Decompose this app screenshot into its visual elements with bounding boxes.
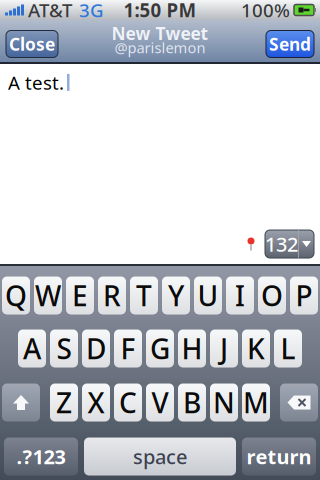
button[interactable]: 132 bbox=[265, 230, 314, 258]
staticText: .?123 bbox=[16, 443, 65, 470]
button[interactable]: S bbox=[50, 329, 78, 367]
button[interactable]: D bbox=[82, 329, 110, 367]
button[interactable]: G bbox=[146, 329, 174, 367]
staticText: space bbox=[133, 443, 187, 470]
button[interactable]: T bbox=[130, 276, 158, 314]
button[interactable]: M bbox=[242, 383, 270, 421]
staticText: R bbox=[103, 277, 121, 314]
staticText: T bbox=[136, 277, 152, 314]
staticText: 1:50 PM bbox=[123, 0, 196, 22]
button[interactable]: Delete bbox=[280, 383, 318, 421]
button[interactable]: Send bbox=[266, 30, 314, 57]
button[interactable]: A bbox=[18, 329, 46, 367]
staticText: G bbox=[150, 330, 170, 367]
staticText: K bbox=[247, 330, 265, 367]
button[interactable]: return bbox=[242, 437, 316, 475]
button[interactable]: H bbox=[178, 329, 206, 367]
button[interactable]: B bbox=[178, 383, 206, 421]
staticText: A bbox=[23, 330, 41, 367]
button[interactable]: Z bbox=[50, 383, 78, 421]
staticText: W bbox=[35, 277, 61, 314]
staticText: V bbox=[151, 384, 168, 421]
staticText: 132 bbox=[265, 231, 298, 257]
button[interactable]: O bbox=[258, 276, 286, 314]
staticText: 3G bbox=[79, 0, 104, 22]
staticText: A test. bbox=[8, 70, 64, 95]
button[interactable]: space bbox=[84, 437, 236, 475]
staticText: F bbox=[120, 330, 135, 367]
button[interactable]: I bbox=[226, 276, 254, 314]
button[interactable]: L bbox=[274, 329, 302, 367]
button[interactable]: F bbox=[114, 329, 142, 367]
staticText: H bbox=[181, 330, 202, 367]
button[interactable]: Shift bbox=[2, 383, 40, 421]
staticText: P bbox=[295, 277, 312, 314]
staticText: C bbox=[119, 384, 137, 421]
button[interactable]: E bbox=[66, 276, 94, 314]
staticText: B bbox=[183, 384, 201, 421]
staticText: I bbox=[235, 277, 245, 314]
staticText: U bbox=[197, 277, 218, 314]
staticText: Q bbox=[5, 277, 27, 314]
button[interactable]: V bbox=[146, 383, 174, 421]
staticText: Y bbox=[168, 277, 184, 314]
button[interactable]: N bbox=[210, 383, 238, 421]
staticText: M bbox=[243, 384, 269, 421]
staticText: L bbox=[280, 330, 295, 367]
button[interactable]: Close bbox=[6, 30, 58, 57]
staticText: @parislemon bbox=[114, 38, 205, 57]
button[interactable]: P bbox=[290, 276, 318, 314]
button[interactable]: Q bbox=[2, 276, 30, 314]
staticText: AT&T bbox=[28, 0, 72, 22]
button[interactable]: Y bbox=[162, 276, 190, 314]
button[interactable]: J bbox=[210, 329, 238, 367]
button[interactable]: R bbox=[98, 276, 126, 314]
staticText: O bbox=[261, 277, 283, 314]
staticText: return bbox=[246, 443, 311, 470]
button[interactable]: .?123 bbox=[4, 437, 78, 475]
button[interactable]: K bbox=[242, 329, 270, 367]
staticText: 100% bbox=[241, 0, 290, 22]
staticText: Send bbox=[269, 32, 311, 55]
staticText: N bbox=[213, 384, 235, 421]
button[interactable]: W bbox=[34, 276, 62, 314]
staticText: D bbox=[86, 330, 106, 367]
staticText: New Tweet bbox=[111, 22, 208, 45]
staticText: Close bbox=[9, 32, 55, 55]
staticText: E bbox=[72, 277, 88, 314]
staticText: Z bbox=[56, 384, 72, 421]
button[interactable]: U bbox=[194, 276, 222, 314]
button[interactable]: X bbox=[82, 383, 110, 421]
staticText: J bbox=[220, 330, 228, 367]
staticText: X bbox=[87, 384, 104, 421]
button[interactable]: C bbox=[114, 383, 142, 421]
staticText: S bbox=[56, 330, 71, 367]
